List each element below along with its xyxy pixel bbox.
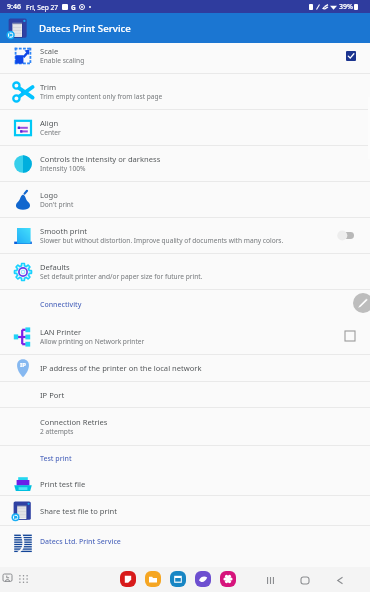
button[interactable]: Edit — [353, 293, 370, 313]
button[interactable]: Trim — [0, 74, 370, 110]
button[interactable]: Internet — [195, 571, 211, 587]
staticText: IP Port — [40, 390, 65, 400]
button[interactable]: Scale — [0, 38, 370, 74]
staticText: Datecs Ltd. Print Service — [40, 537, 121, 547]
staticText: Enable scaling — [40, 56, 85, 65]
staticText: Logo — [40, 190, 58, 200]
staticText: Connectivity — [40, 300, 82, 310]
staticText: Connection Retries — [40, 417, 108, 427]
staticText: Align — [40, 118, 59, 128]
staticText: 2 attempts — [40, 427, 74, 436]
button[interactable]: Connection Retries — [0, 408, 370, 446]
button[interactable]: Smooth print — [0, 218, 370, 254]
staticText: Slower but without distortion. Improve q… — [40, 236, 284, 245]
staticText: Print test file — [40, 479, 86, 489]
staticText: 9:46 — [7, 2, 21, 12]
button[interactable]: Enable scaling — [346, 51, 356, 61]
staticText: Test print — [40, 454, 72, 464]
button[interactable]: Back — [334, 574, 346, 586]
staticText: Center — [40, 128, 61, 137]
button[interactable]: LAN Printer — [345, 331, 355, 341]
button[interactable]: Print test file — [0, 472, 370, 496]
staticText: Controls the intensity or darkness — [40, 154, 161, 164]
staticText: Datecs Print Service — [39, 22, 131, 35]
button[interactable]: Datecs Print Service — [0, 13, 370, 43]
button[interactable]: All apps — [19, 575, 28, 583]
button[interactable]: Align — [0, 110, 370, 146]
button[interactable]: Datecs Ltd. Print Service — [0, 526, 370, 562]
button[interactable]: Logo — [0, 182, 370, 218]
button[interactable]: Photos — [220, 571, 236, 587]
button[interactable]: Controls the intensity or darkness — [0, 146, 370, 182]
staticText: IP — [20, 361, 27, 369]
button[interactable]: Adobe Acrobat — [120, 571, 136, 587]
staticText: Don't print — [40, 200, 74, 209]
staticText: G — [71, 3, 76, 12]
button[interactable]: Screen capture — [3, 574, 12, 583]
staticText: Trim — [40, 82, 57, 92]
staticText: 39% — [339, 2, 353, 12]
button[interactable]: Home — [299, 574, 311, 586]
staticText: Trim empty content only from last page — [40, 92, 163, 101]
staticText: LAN Printer — [40, 327, 82, 337]
staticText: Fri, Sep 27 — [26, 3, 58, 12]
button[interactable]: Smooth print — [337, 230, 354, 241]
staticText: Allow printing on Network printer — [40, 337, 145, 346]
staticText: Intensity 100% — [40, 164, 86, 173]
staticText: Scale — [40, 46, 59, 56]
staticText: IP address of the printer on the local n… — [40, 363, 202, 373]
button[interactable]: Recent apps — [264, 574, 276, 586]
button[interactable]: Calendar — [170, 571, 186, 587]
staticText: Set default printer and/or paper size fo… — [40, 272, 203, 281]
staticText: Share test file to print — [40, 506, 118, 516]
staticText: Defaults — [40, 262, 70, 272]
button[interactable]: IP — [0, 355, 370, 382]
button[interactable]: Share test file to print — [0, 496, 370, 526]
button[interactable]: LAN Printer — [0, 319, 370, 355]
staticText: Smooth print — [40, 226, 88, 236]
button[interactable]: My Files — [145, 571, 161, 587]
button[interactable]: Defaults — [0, 254, 370, 290]
button[interactable]: IP Port — [0, 382, 370, 408]
